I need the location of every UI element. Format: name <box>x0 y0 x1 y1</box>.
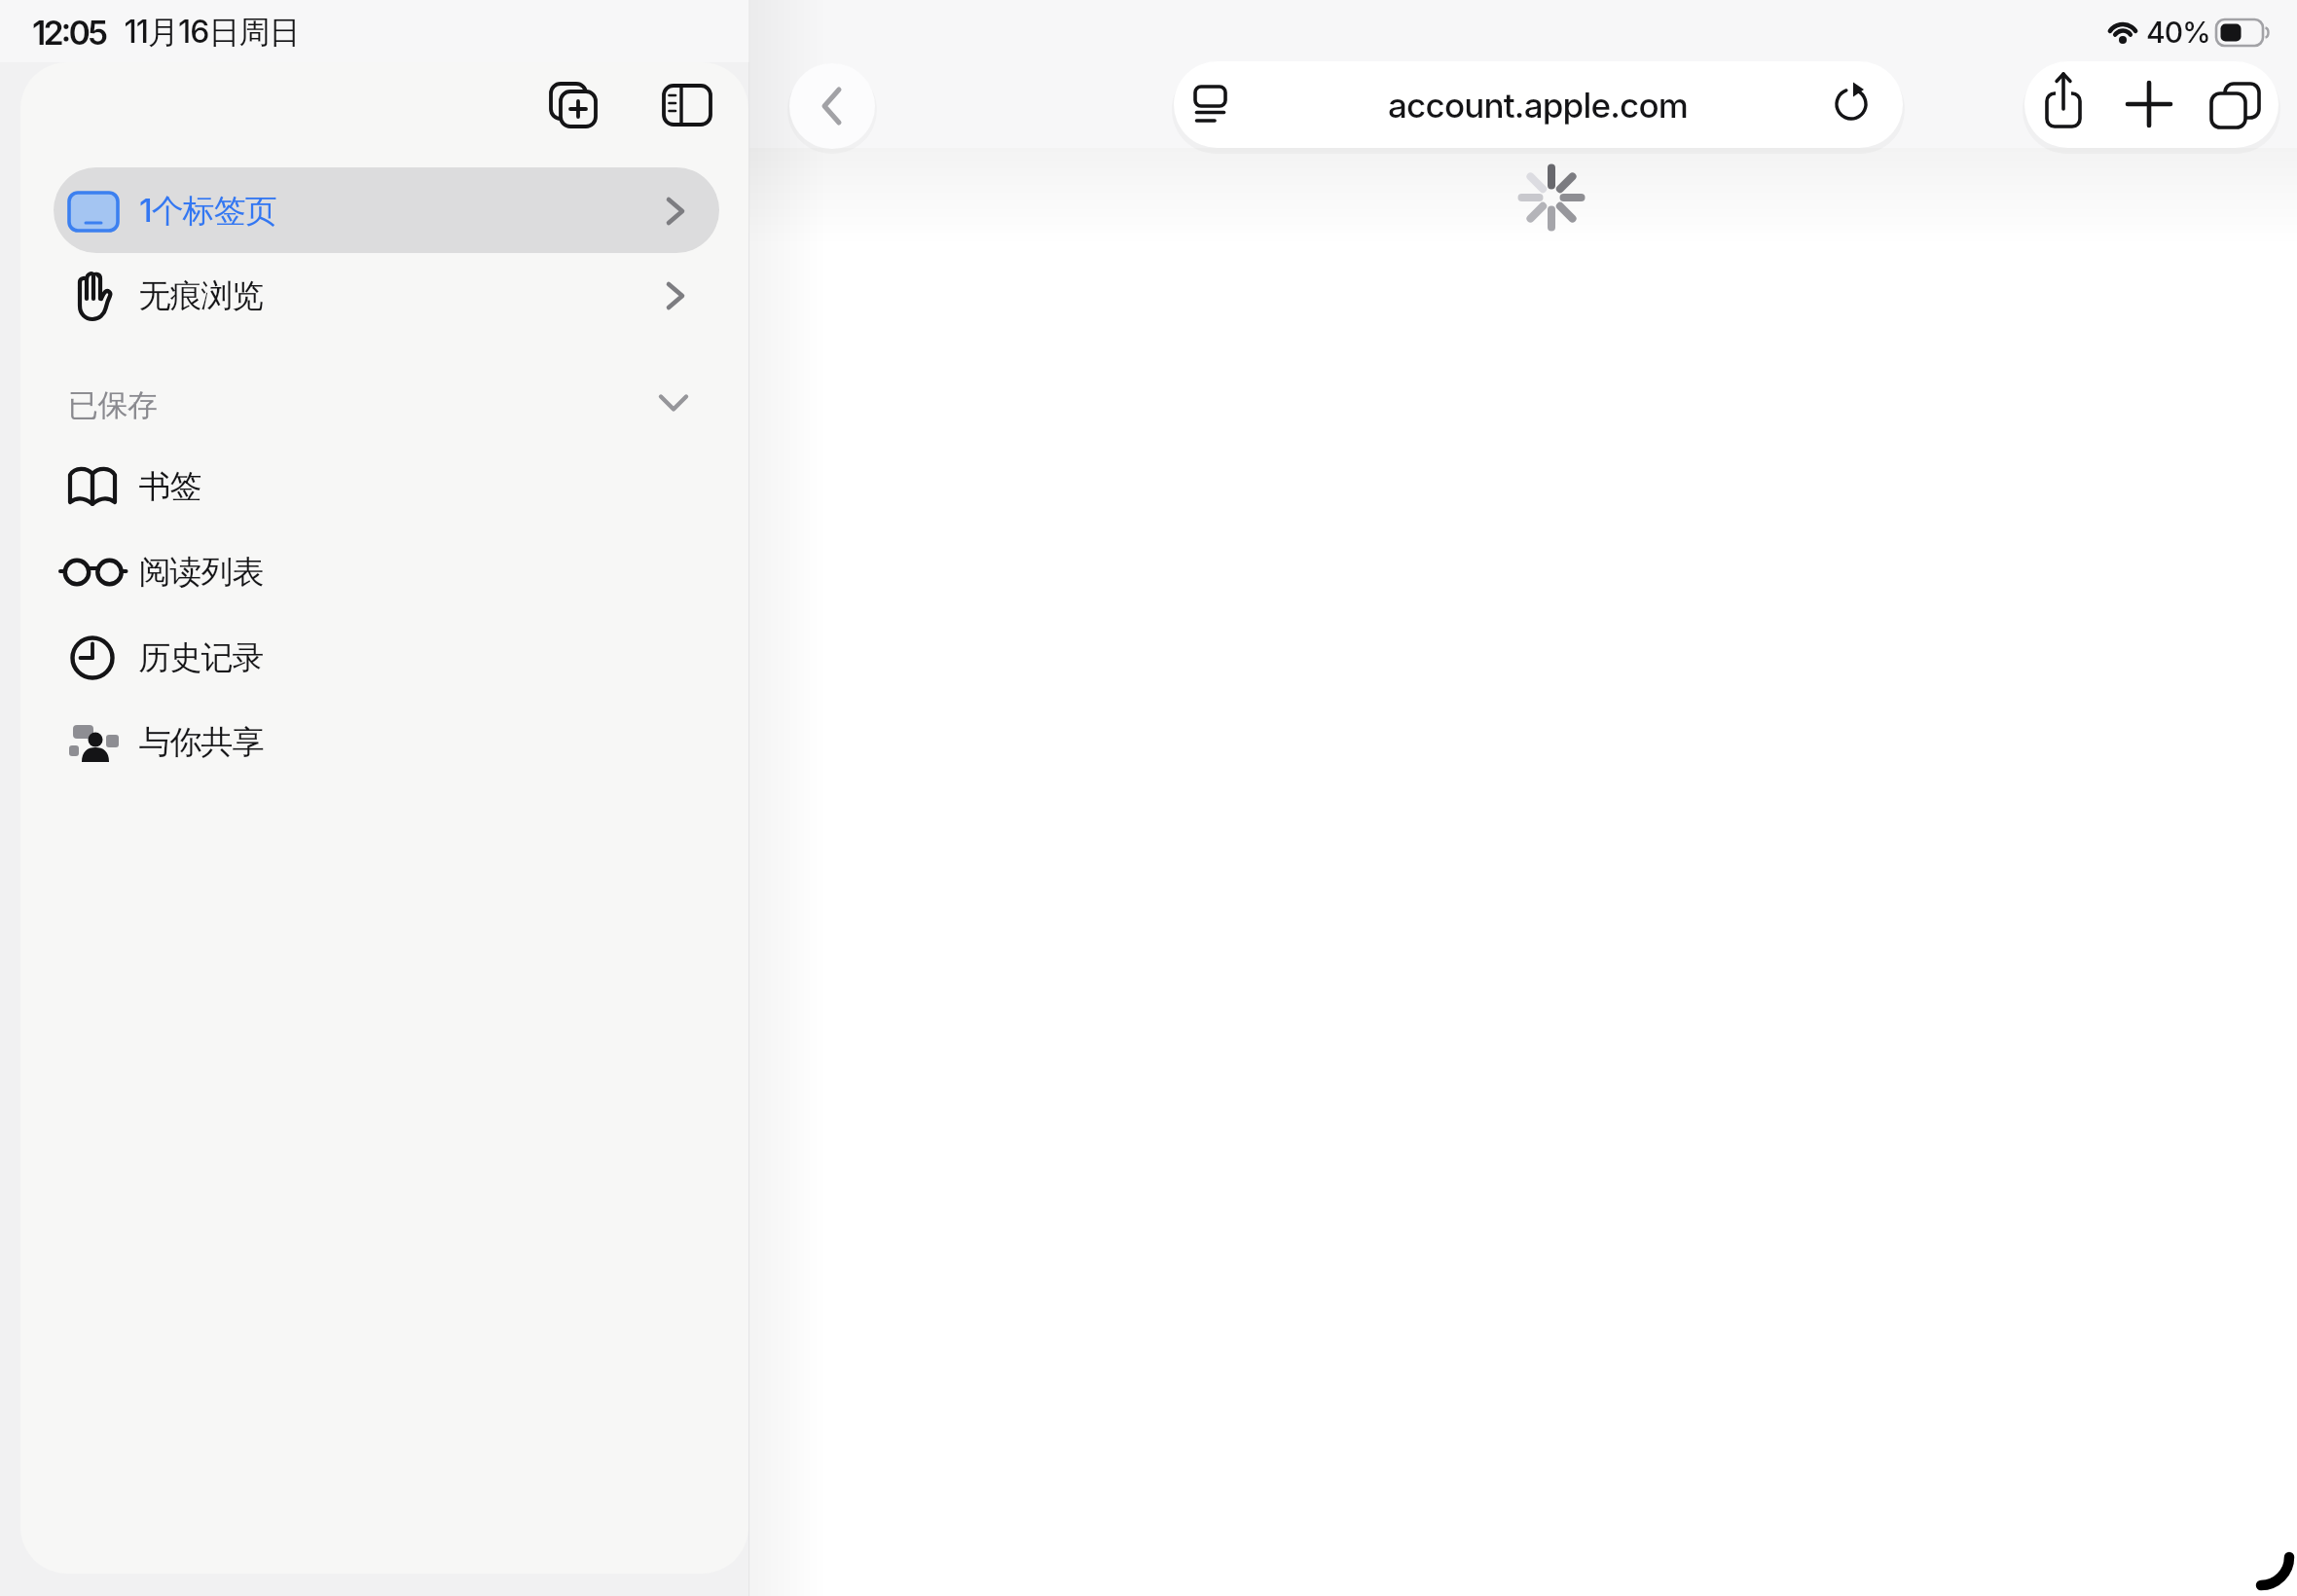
staticText: 阅读列表 <box>139 552 264 593</box>
button[interactable] <box>789 63 875 149</box>
button[interactable] <box>54 167 719 253</box>
button[interactable] <box>2032 61 2106 148</box>
staticText: 11月16日周日 <box>125 13 300 53</box>
staticText: 1个标签页 <box>139 191 276 232</box>
staticText: 40% <box>2146 15 2210 50</box>
button[interactable] <box>54 362 719 448</box>
button[interactable] <box>54 253 719 339</box>
button[interactable] <box>2112 61 2186 148</box>
button[interactable] <box>54 700 719 785</box>
staticText: 书签 <box>139 466 201 507</box>
button[interactable] <box>54 529 719 615</box>
button[interactable] <box>54 444 719 529</box>
staticText: account.apple.com <box>1388 85 1689 126</box>
staticText: 历史记录 <box>139 637 264 678</box>
button[interactable] <box>658 78 716 132</box>
staticText: 无痕浏览 <box>139 275 264 316</box>
staticText: 与你共享 <box>139 722 264 763</box>
button[interactable] <box>2192 61 2266 148</box>
button[interactable] <box>1174 61 1903 148</box>
staticText: 已保存 <box>68 386 158 424</box>
staticText: 12:05 <box>32 13 106 53</box>
button[interactable] <box>545 78 602 132</box>
button[interactable] <box>54 615 719 701</box>
